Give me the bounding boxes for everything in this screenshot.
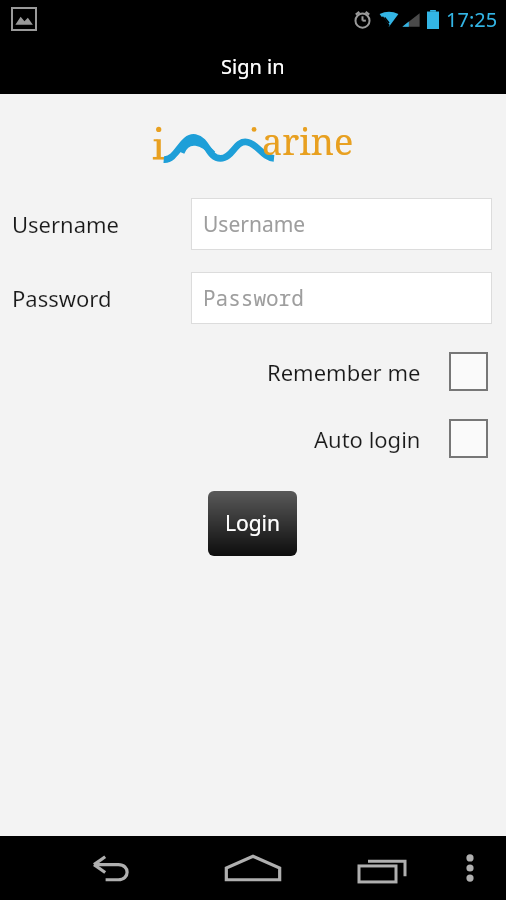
button[interactable]: More options — [448, 844, 492, 892]
button[interactable]: Remember me — [0, 352, 506, 391]
button[interactable]: Login — [208, 491, 297, 556]
staticText: Sign in — [221, 53, 285, 80]
button[interactable]: Password field — [191, 272, 492, 324]
button[interactable]: Recent apps — [348, 844, 416, 892]
staticText: Remember me — [267, 357, 421, 387]
staticText: Login — [225, 509, 281, 538]
staticText: Auto login — [314, 424, 421, 454]
staticText: 17:25 — [446, 6, 498, 33]
staticText: Password — [12, 283, 112, 313]
button[interactable]: Username field — [191, 198, 492, 250]
staticText: arine — [262, 117, 354, 166]
staticText: Username — [203, 210, 306, 239]
button[interactable]: Back — [78, 844, 146, 892]
button[interactable]: Home — [219, 844, 287, 892]
button[interactable]: Auto login — [0, 419, 506, 458]
staticText: Username — [12, 209, 120, 239]
staticText: Password — [203, 284, 304, 313]
